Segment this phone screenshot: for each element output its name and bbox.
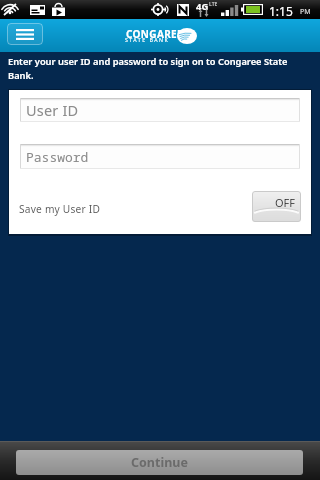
staticText: PM	[300, 7, 311, 17]
staticText: Password	[26, 148, 89, 166]
staticText: 1:15	[269, 3, 293, 19]
button[interactable]: User ID	[20, 98, 300, 122]
button[interactable]: Menu	[7, 23, 43, 45]
staticText: Enter your user ID and password to sign …	[8, 55, 302, 82]
button[interactable]: Continue	[16, 450, 303, 475]
button[interactable]: Password	[20, 144, 300, 169]
staticText: CONGAREE	[126, 27, 183, 41]
staticText: LTE	[209, 1, 218, 8]
button[interactable]: OFF	[252, 191, 301, 222]
staticText: Save my User ID	[19, 202, 101, 216]
staticText: Continue	[131, 454, 188, 471]
staticText: STATE BANK	[125, 36, 170, 43]
staticText: User ID	[26, 100, 79, 120]
staticText: OFF	[275, 195, 296, 210]
staticText: 4G	[196, 0, 209, 13]
